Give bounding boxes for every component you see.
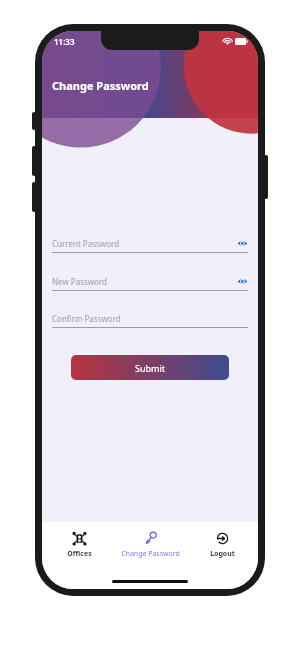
- staticText: Change Password: [52, 78, 149, 93]
- staticText: Current Password: [52, 238, 236, 249]
- staticText: Submit: [135, 362, 166, 374]
- button[interactable]: Change Password: [115, 529, 185, 561]
- staticText: 11:33: [54, 36, 75, 47]
- button[interactable]: Offices: [44, 529, 114, 561]
- button[interactable]: Current Password: [52, 237, 248, 253]
- staticText: Change Password: [121, 549, 180, 559]
- staticText: New Password: [52, 276, 236, 287]
- staticText: Logout: [210, 549, 235, 559]
- button[interactable]: Submit: [71, 355, 229, 380]
- button[interactable]: New Password: [52, 275, 248, 291]
- button[interactable]: Logout: [187, 529, 257, 561]
- staticText: Offices: [67, 549, 92, 559]
- button[interactable]: Show password: [236, 237, 248, 249]
- button[interactable]: Confirm Password: [52, 313, 248, 328]
- button[interactable]: Show password: [236, 275, 248, 287]
- staticText: Confirm Password: [52, 313, 248, 324]
